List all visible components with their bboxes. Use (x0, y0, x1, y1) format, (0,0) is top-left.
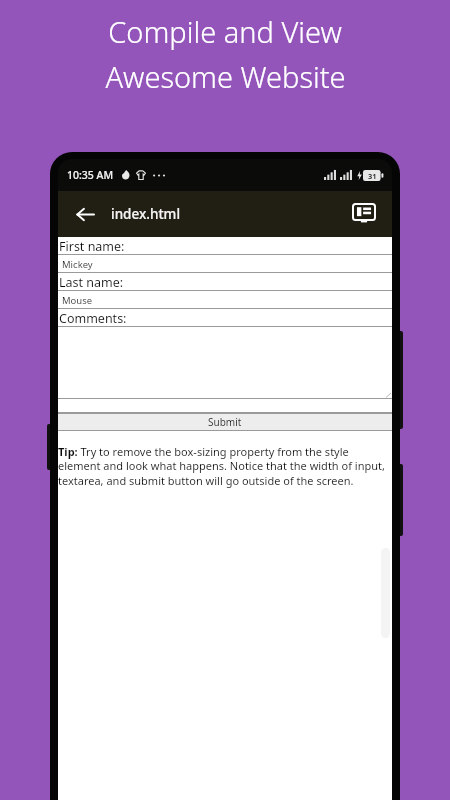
staticText: Last name: (59, 274, 124, 291)
button[interactable]: Tabs (346, 196, 382, 232)
button[interactable]: Mickey (58, 255, 392, 273)
staticText: Awesome Website (105, 57, 346, 96)
staticText: Mickey (62, 258, 93, 271)
staticText: 10:35 AM (67, 168, 114, 182)
staticText: 31 (368, 171, 377, 181)
staticText: index.html (111, 205, 181, 223)
staticText: Comments: (59, 310, 127, 327)
button[interactable]: Submit (58, 413, 392, 431)
staticText: Mouse (62, 294, 93, 307)
button[interactable]: Mouse (58, 291, 392, 309)
staticText: Submit (208, 415, 242, 429)
button[interactable] (58, 327, 392, 399)
button[interactable]: Back (68, 197, 102, 231)
staticText: Tip: Try to remove the box-sizing proper… (58, 444, 392, 489)
staticText: First name: (59, 238, 125, 255)
staticText: Compile and View (108, 12, 342, 51)
